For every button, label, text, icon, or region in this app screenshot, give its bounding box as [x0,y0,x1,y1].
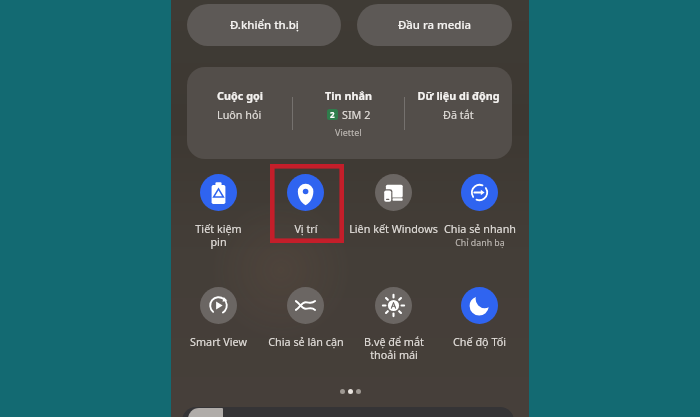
button[interactable]: Vị trí [262,174,349,236]
staticText: Chỉ danh bạ [455,237,505,249]
button[interactable]: Dữ liệu di động [405,88,512,122]
button[interactable]: Đầu ra media [357,4,512,46]
staticText: B.vệ để mắt thoải mái [364,334,424,362]
button[interactable]: Liên kết Windows [350,174,437,236]
button[interactable]: Đ.khiển th.bị [187,4,341,46]
other: Bảo vệ để mắt thoải mái [375,287,412,324]
button[interactable]: Smart View [175,287,262,349]
staticText: Liên kết Windows [349,221,438,236]
button[interactable]: Chia sẻ nhanh [436,174,523,249]
button[interactable]: Bảo vệ để mắt thoải mái [350,287,437,362]
staticText: Đã tắt [443,107,474,122]
staticText: SIM 2 [342,107,371,122]
button[interactable]: Tiết kiệm pin [175,174,262,249]
staticText: Chia sẻ nhanh [444,221,516,236]
other: Tiết kiệm pin [200,174,237,211]
staticText: Viettel [335,126,362,138]
staticText: Tiết kiệm pin [195,221,242,249]
staticText: Chia sẻ lân cận [268,334,344,349]
other: Chia sẻ nhanh [461,174,498,211]
button[interactable]: Cuộc gọi [187,88,292,122]
staticText: Cuộc gọi [217,88,263,103]
staticText: Tin nhắn [325,88,372,103]
other: Chia sẻ lân cận [287,287,324,324]
button[interactable]: Chế độ Tối [436,287,523,349]
staticText: Chế độ Tối [453,334,506,349]
other: Vị trí [287,174,324,211]
other: Smart View [200,287,237,324]
staticText: 2 [330,109,335,120]
staticText: Đ.khiển th.bị [230,17,299,33]
staticText: Đầu ra media [398,17,471,33]
staticText: Dữ liệu di động [417,88,500,103]
staticText: Smart View [190,334,247,349]
staticText: Vị trí [294,221,318,236]
button[interactable]: Chia sẻ lân cận [262,287,349,349]
other: Liên kết Windows [375,174,412,211]
other: Chế độ Tối [461,287,498,324]
button[interactable]: Tin nhắn [293,88,404,138]
staticText: Luôn hỏi [217,107,262,122]
button[interactable] [182,407,514,417]
